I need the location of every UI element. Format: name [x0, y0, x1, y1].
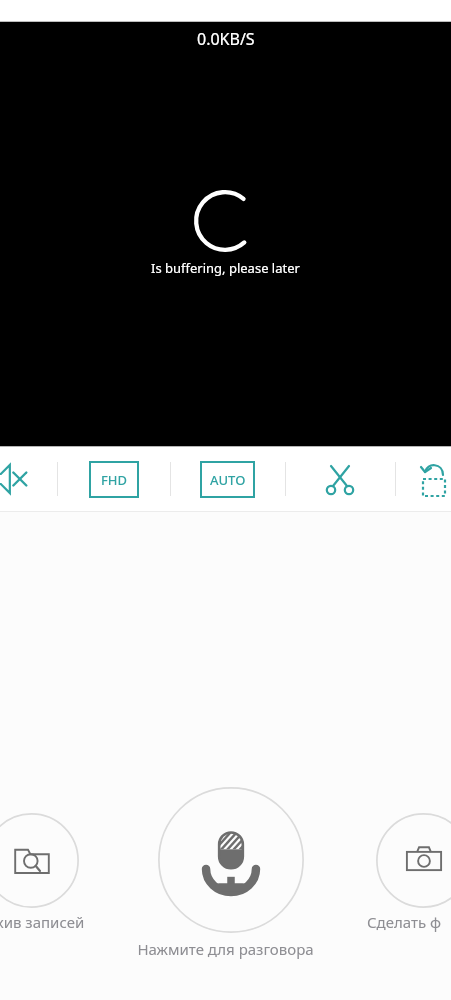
staticText: Is buffering, please later: [151, 259, 300, 277]
button[interactable]: FHD: [90, 462, 138, 497]
button[interactable]: Cut: [317, 456, 363, 502]
button[interactable]: Take photo: [376, 813, 451, 908]
staticText: Нажмите для разговора: [137, 939, 314, 959]
staticText: 0.0KB/S: [197, 28, 255, 50]
button[interactable]: Mute: [0, 453, 35, 505]
button[interactable]: Save clip: [411, 456, 451, 502]
button[interactable]: Push to talk: [158, 787, 304, 933]
staticText: AUTO: [210, 471, 246, 489]
button[interactable]: Archive of recordings: [0, 813, 79, 908]
button[interactable]: AUTO: [201, 462, 254, 497]
staticText: FHD: [101, 471, 128, 489]
staticText: хив записей: [0, 912, 85, 932]
staticText: Сделать ф: [367, 912, 442, 932]
